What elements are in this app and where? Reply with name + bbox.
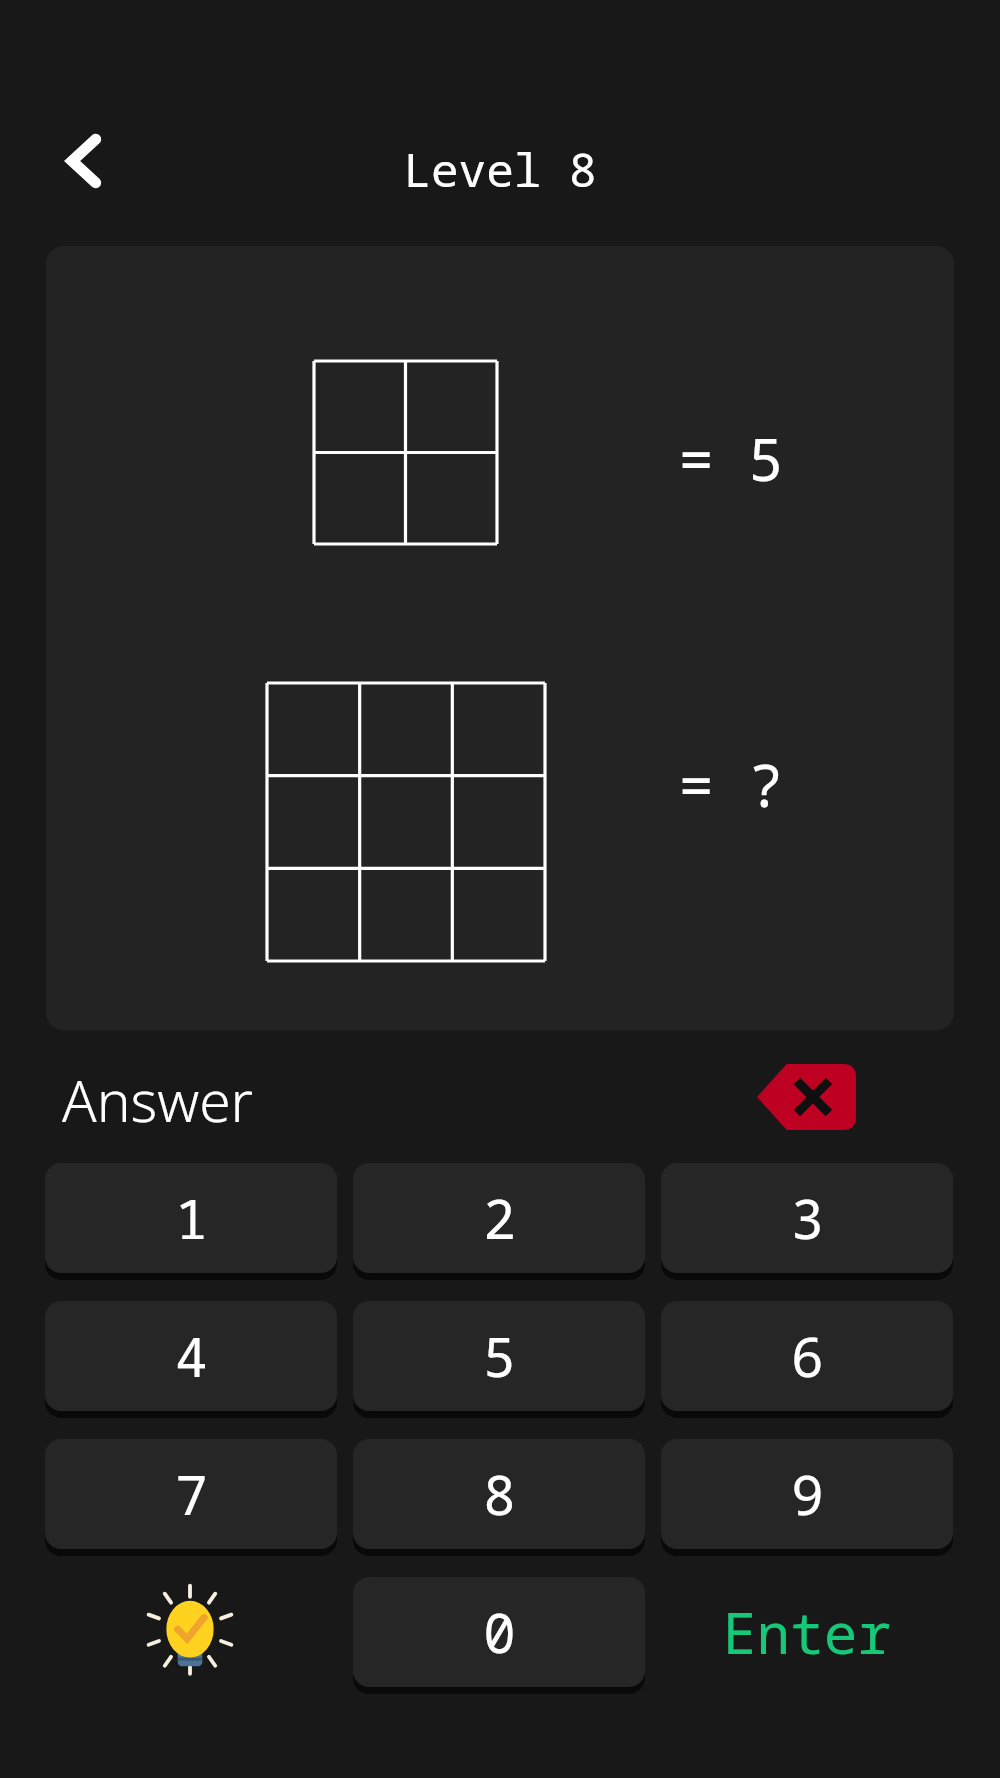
button[interactable]: 2 [353, 1163, 645, 1273]
button[interactable]: 6 [661, 1301, 953, 1411]
button[interactable]: Backspace [757, 1064, 856, 1130]
button[interactable]: 4 [45, 1301, 337, 1411]
button[interactable]: Hint [135, 1578, 245, 1688]
button[interactable]: 0 [353, 1577, 645, 1687]
staticText: 4 [175, 1319, 208, 1393]
button[interactable]: Enter [661, 1577, 953, 1687]
button[interactable]: 7 [45, 1439, 337, 1549]
staticText: 2 [483, 1181, 516, 1255]
staticText: = ? [673, 745, 789, 819]
staticText: 0 [483, 1595, 516, 1669]
button[interactable]: 8 [353, 1439, 645, 1549]
staticText: 8 [483, 1457, 516, 1531]
staticText: 6 [791, 1319, 824, 1393]
staticText: 3 [791, 1181, 824, 1255]
button[interactable]: Back [56, 130, 118, 192]
staticText: Answer [62, 1061, 254, 1139]
staticText: Enter [723, 1594, 891, 1670]
button[interactable]: 1 [45, 1163, 337, 1273]
staticText: 9 [791, 1457, 824, 1531]
staticText: 7 [175, 1457, 208, 1531]
staticText: Level 8 [0, 138, 1000, 201]
button[interactable]: 3 [661, 1163, 953, 1273]
staticText: 5 [483, 1319, 516, 1393]
staticText: 1 [175, 1181, 208, 1255]
button[interactable]: 5 [353, 1301, 645, 1411]
button[interactable]: 9 [661, 1439, 953, 1549]
staticText: = 5 [673, 419, 789, 493]
